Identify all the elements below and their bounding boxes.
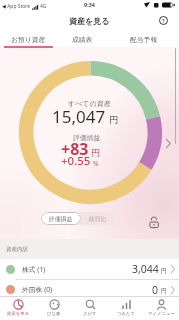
button[interactable]: 外国株 (0) xyxy=(0,280,179,296)
button[interactable]: 前日比 xyxy=(81,212,115,225)
staticText: 円 xyxy=(161,267,167,275)
button[interactable]: 成績表 xyxy=(62,35,102,44)
button[interactable]: 配当予報 xyxy=(123,35,164,44)
staticText: さがす xyxy=(83,311,97,317)
staticText: 資産内訳 xyxy=(6,246,28,253)
button[interactable]: ひな森 xyxy=(36,296,72,320)
button[interactable]: つみたて xyxy=(108,296,144,320)
staticText: お預り資産 xyxy=(11,35,46,44)
staticText: 円 xyxy=(91,147,100,158)
staticText: 株式 (1) xyxy=(22,265,46,274)
staticText: 円 xyxy=(161,287,167,295)
staticText: 評価損益 xyxy=(73,133,101,142)
staticText: 15,047 xyxy=(52,105,106,128)
staticText: つみたて xyxy=(117,311,135,317)
staticText: マイメニュー xyxy=(148,311,175,317)
staticText: 資産を見る xyxy=(7,311,30,317)
staticText: すべての資産 xyxy=(68,99,111,108)
staticText: ひな森 xyxy=(47,311,61,317)
staticText: 9:34 xyxy=(84,1,95,8)
staticText: 成績表 xyxy=(72,35,93,44)
button[interactable]: ? xyxy=(159,16,168,25)
staticText: 4G xyxy=(40,3,47,10)
button[interactable]: お預り資産 xyxy=(8,35,48,44)
button[interactable]: 資産を見る xyxy=(0,296,36,320)
button[interactable]: 評価損益 xyxy=(41,212,81,225)
button[interactable]: 株式 (1) xyxy=(0,259,179,279)
staticText: ◀ App Store xyxy=(2,3,31,10)
staticText: 円 xyxy=(109,114,119,126)
staticText: 0 xyxy=(152,283,159,296)
staticText: ? xyxy=(162,17,165,24)
staticText: 資産を見る xyxy=(69,16,110,26)
button[interactable]: マイメニュー xyxy=(144,296,179,320)
button[interactable]: さがす xyxy=(72,296,108,320)
staticText: 配当予報 xyxy=(130,35,158,44)
staticText: 外国株 (0) xyxy=(22,285,53,294)
staticText: +83 xyxy=(61,138,89,160)
staticText: 3,044 xyxy=(132,262,159,276)
staticText: +0.55 xyxy=(61,153,91,169)
staticText: 前日比 xyxy=(89,215,107,222)
staticText: 評価損益 xyxy=(49,215,73,222)
staticText: % xyxy=(93,159,99,168)
